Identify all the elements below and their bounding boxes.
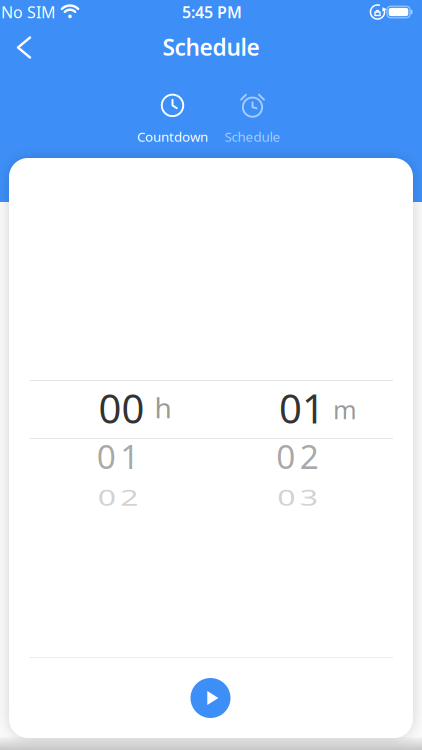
staticText: m	[333, 393, 357, 426]
button[interactable]: Countdown	[137, 95, 208, 145]
staticText: h	[154, 389, 171, 426]
button[interactable]: Schedule	[224, 93, 280, 145]
staticText: Schedule	[162, 32, 259, 62]
staticText: No SIM	[1, 1, 56, 23]
staticText: 02	[98, 476, 138, 519]
staticText: 01	[279, 381, 325, 434]
staticText: Schedule	[224, 128, 280, 145]
staticText: 03	[277, 476, 318, 519]
staticText: 00	[98, 381, 144, 434]
button[interactable]: Start	[190, 678, 230, 718]
button[interactable]: Back	[4, 25, 44, 69]
staticText: Countdown	[137, 128, 208, 145]
staticText: 01	[97, 434, 139, 478]
staticText: 5:45 PM	[182, 1, 242, 23]
staticText: 02	[276, 434, 319, 478]
